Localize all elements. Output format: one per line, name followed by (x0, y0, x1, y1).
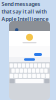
staticText: Apple Intelligence (1, 15, 48, 23)
staticText: Send messages (1, 0, 40, 8)
staticText: that say it all with (1, 8, 46, 15)
